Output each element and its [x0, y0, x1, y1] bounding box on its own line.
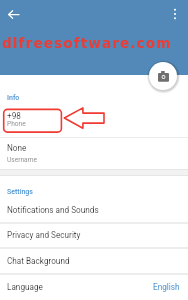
button[interactable]: Privacy and Security — [0, 222, 188, 248]
staticText: dlfreesoftware.com — [2, 35, 172, 51]
button[interactable]: Notifications and Sounds — [0, 197, 188, 223]
button[interactable]: More options — [165, 4, 185, 24]
staticText: Username — [7, 156, 37, 164]
button[interactable]: Language — [0, 274, 188, 300]
button[interactable]: Change profile photo — [149, 62, 177, 90]
button[interactable]: Back — [3, 4, 23, 24]
staticText: Chat Background — [7, 256, 70, 266]
staticText: Privacy and Security — [7, 230, 81, 240]
staticText: Phone — [7, 120, 26, 128]
button[interactable] — [0, 138, 188, 169]
staticText: Language — [7, 282, 43, 292]
staticText: Notifications and Sounds — [7, 205, 99, 215]
staticText: Settings — [7, 188, 33, 196]
staticText: +98 — [7, 111, 21, 121]
button[interactable] — [0, 104, 188, 137]
staticText: English — [153, 282, 180, 292]
button[interactable]: Chat Background — [0, 248, 188, 274]
staticText: Info — [7, 94, 20, 102]
staticText: None — [7, 143, 27, 153]
